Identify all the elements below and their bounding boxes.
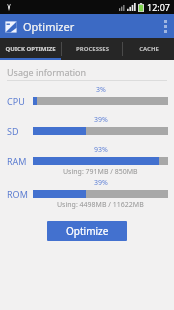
staticText: CPU (7, 95, 25, 107)
button[interactable]: QUICK OPTIMIZE (0, 38, 61, 60)
staticText: Using: 4498MB / 11622MB (57, 200, 144, 210)
staticText: QUICK OPTIMIZE (5, 45, 56, 53)
staticText: 12:07 (147, 1, 171, 13)
staticText: PROCESSES (76, 45, 109, 53)
staticText: CACHE (139, 45, 159, 53)
staticText: SD (7, 125, 19, 137)
staticText: 39% (94, 178, 108, 188)
staticText: 93% (94, 145, 108, 155)
button[interactable]: More options (156, 14, 174, 38)
staticText: Using: 791MB / 850MB (63, 167, 138, 177)
button[interactable]: Optimize (47, 221, 127, 241)
staticText: RAM (7, 155, 27, 167)
button[interactable]: CACHE (123, 38, 174, 60)
staticText: 3% (96, 85, 106, 95)
staticText: Optimizer (23, 19, 75, 34)
staticText: Usage information (7, 66, 87, 78)
staticText: 39% (94, 115, 108, 125)
staticText: ROM (7, 188, 28, 200)
staticText: Optimize (66, 224, 109, 238)
button[interactable]: PROCESSES (62, 38, 122, 60)
